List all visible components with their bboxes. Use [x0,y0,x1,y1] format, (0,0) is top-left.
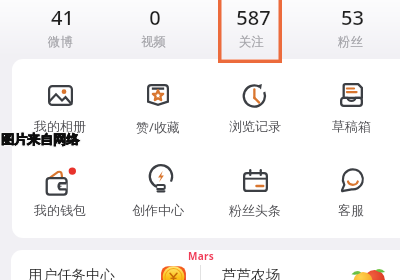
staticText: 客服 [338,202,364,218]
staticText: 视频 [141,34,166,50]
button[interactable]: 41 [20,0,100,52]
staticText: 草稿箱 [332,118,371,134]
button[interactable]: 我的相册 [15,73,105,133]
staticText: 图片来自网络 [0,131,78,147]
staticText: 图片来自网络 [1,131,79,147]
staticText: 图片来自网络 [1,131,79,147]
staticText: 图片来自网络 [1,130,79,146]
button[interactable]: 赞/收藏 [113,73,203,133]
button[interactable]: 芦芦农场 [201,250,400,280]
button[interactable]: 53 [310,0,390,52]
staticText: 图片来自网络 [2,132,80,148]
staticText: Mars [188,249,215,263]
staticText: 粉丝头条 [229,202,281,218]
staticText: 53 [341,4,364,31]
staticText: 图片来自网络 [1,131,79,147]
staticText: 微博 [48,34,73,50]
staticText: 浏览记录 [229,118,281,134]
staticText: 587 [236,4,271,31]
staticText: 关注 [239,34,264,50]
button[interactable]: 客服 [306,158,396,218]
button[interactable]: 创作中心 [113,158,203,218]
staticText: 我的相册 [34,118,86,134]
button[interactable]: 0 [113,0,193,52]
staticText: 图片来自网络 [0,130,78,146]
button[interactable]: 粉丝头条 [210,158,300,218]
staticText: 图片来自网络 [2,130,80,146]
staticText: 图片来自网络 [1,132,79,148]
staticText: 创作中心 [132,202,184,218]
button[interactable]: 我的钱包 [15,158,105,218]
staticText: 41 [51,4,74,31]
staticText: 0 [149,4,161,31]
staticText: 粉丝 [338,34,363,50]
staticText: 我的钱包 [34,202,86,218]
staticText: 图片来自网络 [2,131,80,147]
staticText: 芦芦农场 [222,266,280,280]
staticText: 图片来自网络 [1,131,79,147]
button[interactable]: 草稿箱 [306,73,396,133]
button[interactable]: 587 [211,0,291,52]
staticText: 图片来自网络 [0,132,78,148]
staticText: 用户任务中心 [28,266,115,280]
button[interactable]: 浏览记录 [210,73,300,133]
staticText: 赞/收藏 [136,118,180,136]
button[interactable]: 用户任务中心 [11,250,201,280]
